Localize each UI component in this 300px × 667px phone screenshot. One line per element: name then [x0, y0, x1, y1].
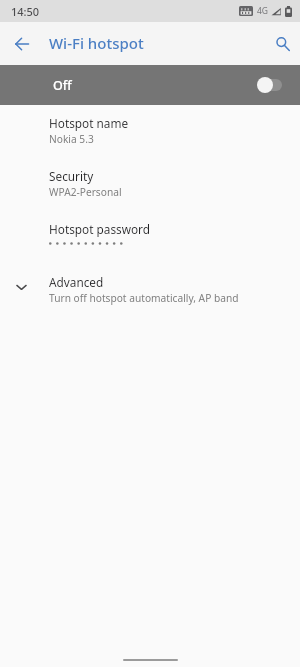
staticText: Turn off hotspot automatically, AP band [49, 291, 239, 305]
staticText: 14:50 [11, 4, 40, 19]
button[interactable]: Advanced [0, 270, 300, 320]
button[interactable]: Security [0, 164, 300, 214]
staticText: Advanced [49, 274, 104, 290]
button[interactable]: Hotspot name [0, 111, 300, 161]
button[interactable]: Hotspot password [0, 217, 300, 267]
staticText: Wi-Fi hotspot [49, 33, 144, 53]
button[interactable]: Search [267, 28, 299, 60]
staticText: Security [49, 168, 94, 184]
staticText: Nokia 5.3 [49, 132, 94, 146]
button[interactable]: Back [6, 28, 38, 60]
staticText: Hotspot name [49, 115, 129, 131]
staticText: 4G [257, 5, 269, 17]
button[interactable]: Off [0, 65, 300, 105]
staticText: Hotspot password [49, 221, 150, 237]
staticText: WPA2-Personal [49, 185, 122, 199]
staticText: Off [53, 77, 72, 94]
